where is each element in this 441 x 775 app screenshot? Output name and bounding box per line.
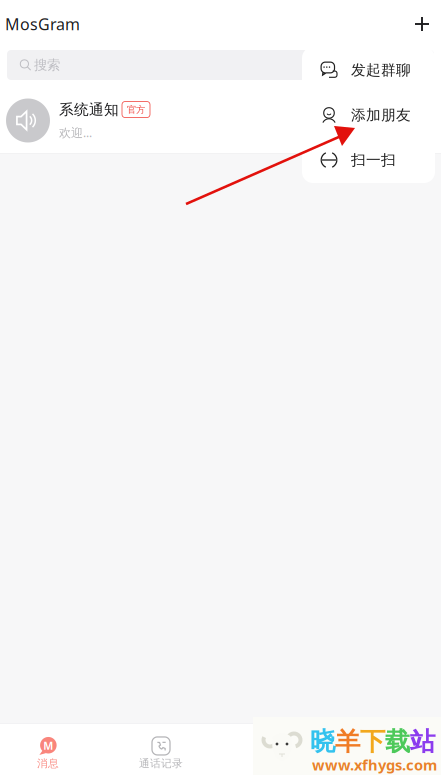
staticText: 通话记录 <box>139 757 183 770</box>
staticText: MosGram <box>5 13 80 35</box>
staticText: 扫一扫 <box>351 151 396 169</box>
staticText: 发起群聊 <box>351 61 411 79</box>
staticText: 官方 <box>127 104 145 115</box>
button[interactable]: 发起群聊 <box>302 47 435 92</box>
button[interactable]: 扫一扫 <box>302 137 435 182</box>
staticText: www.xfhygs.com <box>312 755 437 774</box>
staticText: 羊 <box>335 726 360 757</box>
button[interactable]: 通讯录 <box>226 723 323 775</box>
staticText: 系统通知 <box>59 100 119 118</box>
button[interactable]: 搜索 <box>7 50 434 80</box>
button[interactable]: 系统通知 <box>0 80 441 153</box>
staticText: 消息 <box>37 757 59 770</box>
staticText: 我的 <box>371 757 393 770</box>
staticText: 站 <box>410 726 435 757</box>
button[interactable]: New chat <box>401 3 441 45</box>
staticText: 搜索 <box>34 57 60 73</box>
staticText: 欢迎... <box>59 124 92 140</box>
staticText: M <box>43 738 53 753</box>
staticText: 载 <box>385 726 410 757</box>
button[interactable]: 通话记录 <box>96 723 226 775</box>
button[interactable]: 我的 <box>323 723 441 775</box>
button[interactable]: M <box>0 723 96 775</box>
staticText: 晓 <box>310 726 335 757</box>
staticText: 下 <box>360 726 385 757</box>
staticText: 添加朋友 <box>351 106 411 124</box>
button[interactable]: 添加朋友 <box>302 92 435 137</box>
